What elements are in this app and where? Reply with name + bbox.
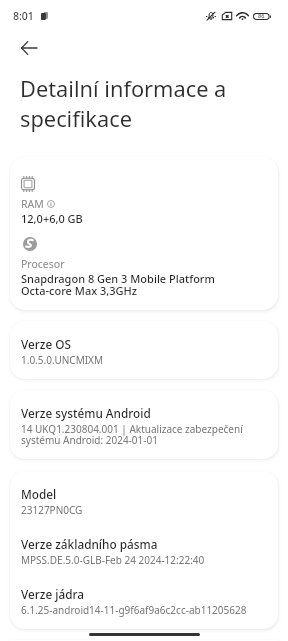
staticText: Verze OS — [21, 336, 71, 352]
staticText: Procesor — [21, 257, 65, 271]
staticText: RAM — [21, 197, 44, 211]
staticText: 6.1.25-android14-11-g9f6af9a6c2cc-ab1120… — [21, 603, 247, 617]
button[interactable]: Verze systému Android — [10, 390, 278, 459]
staticText: 14 UKQ1.230804.001 | Aktualizace zabezpe… — [21, 422, 243, 447]
staticText: 86 — [258, 12, 265, 20]
button[interactable]: RAM — [10, 157, 278, 310]
staticText: 1.0.5.0.UNCMIXM — [21, 353, 104, 367]
button[interactable]: Verze OS — [10, 321, 278, 379]
staticText: Verze základního pásma — [21, 536, 158, 552]
staticText: 12,0+6,0 GB — [21, 211, 83, 226]
staticText: Verze systému Android — [21, 405, 151, 421]
staticText: MPSS.DE.5.0-GLB-Feb 24 2024-12:22:40 — [21, 553, 205, 567]
button[interactable]: Back — [13, 32, 45, 64]
button[interactable]: Model — [10, 471, 278, 629]
staticText: 23127PN0CG — [21, 503, 83, 517]
staticText: Model — [21, 486, 57, 502]
staticText: Verze jádra — [21, 586, 84, 602]
staticText: Detailní informace a specifikace — [20, 74, 268, 133]
staticText: 8:01 — [13, 9, 34, 23]
staticText: Snapdragon 8 Gen 3 Mobile Platform Octa-… — [21, 271, 215, 298]
